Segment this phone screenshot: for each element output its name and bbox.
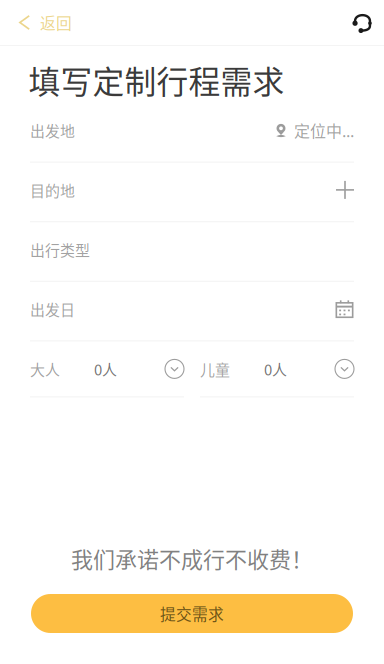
staticText: 定位中...	[294, 119, 354, 142]
staticText: 出发地	[30, 119, 75, 141]
staticText: 0人	[94, 358, 117, 380]
button[interactable]: 出发日	[30, 282, 354, 340]
staticText: 0人	[264, 358, 287, 380]
staticText: 填写定制行程需求	[28, 57, 284, 103]
button[interactable]: 出行类型	[30, 222, 354, 281]
button[interactable]: 返回	[0, 0, 84, 45]
staticText: 出行类型	[30, 239, 90, 260]
staticText: 出发日	[30, 298, 75, 320]
button[interactable]: 大人	[30, 341, 184, 396]
staticText: 大人	[30, 358, 60, 380]
staticText: 目的地	[30, 179, 75, 201]
button[interactable]: 在线客服	[352, 0, 384, 45]
button[interactable]: 出发地	[30, 103, 354, 162]
button[interactable]: 提交需求	[31, 594, 353, 633]
staticText: 返回	[40, 11, 72, 34]
staticText: 我们承诺不成行不收费！	[71, 542, 313, 574]
button[interactable]: 目的地	[30, 163, 354, 221]
staticText: 儿童	[200, 358, 230, 380]
button[interactable]: 儿童	[200, 341, 354, 396]
staticText: 提交需求	[160, 602, 224, 625]
